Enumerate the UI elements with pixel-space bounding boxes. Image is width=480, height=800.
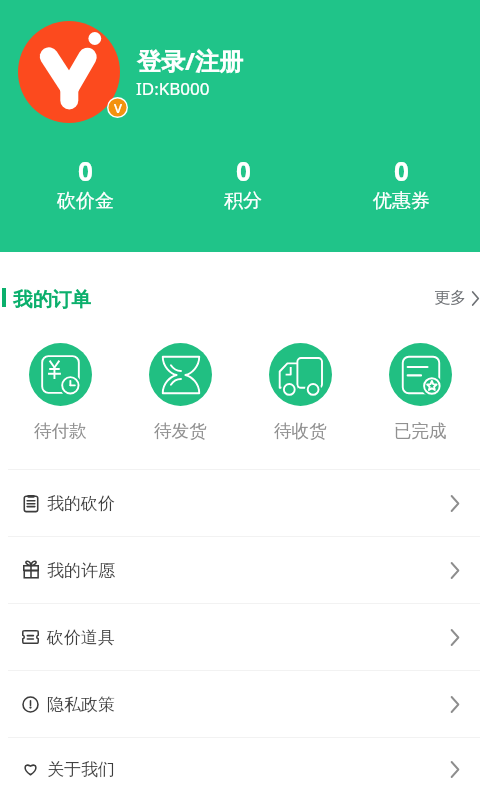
staticText: 隐私政策 (47, 694, 115, 715)
button[interactable]: 我的许愿 (0, 537, 480, 603)
staticText: 我的砍价 (47, 493, 115, 514)
staticText: 我的订单 (13, 287, 91, 312)
button[interactable]: 0 (164, 153, 322, 213)
staticText: 我的许愿 (47, 560, 115, 581)
staticText: 登录/注册 (137, 44, 243, 77)
button[interactable]: 待发货 (120, 343, 240, 442)
staticText: 0 (236, 153, 251, 188)
staticText: 更多 (434, 288, 466, 308)
staticText: ID:KB000 (136, 77, 210, 100)
button[interactable]: 0 (322, 153, 480, 213)
staticText: 关于我们 (47, 759, 115, 780)
button[interactable]: 隐私政策 (0, 671, 480, 737)
button[interactable]: 关于我们 (0, 738, 480, 800)
staticText: 积分 (224, 189, 262, 213)
staticText: 待付款 (34, 420, 87, 442)
button[interactable]: 已完成 (360, 343, 480, 442)
button[interactable]: 0 (6, 153, 164, 213)
staticText: 已完成 (394, 420, 447, 442)
staticText: 待发货 (154, 420, 207, 442)
button[interactable]: 待付款 (0, 343, 120, 442)
button[interactable]: 待收货 (240, 343, 360, 442)
staticText: 0 (394, 153, 409, 188)
staticText: 砍价道具 (47, 627, 115, 648)
staticText: 砍价金 (57, 189, 114, 213)
button[interactable]: 更多 (422, 288, 480, 308)
staticText: 0 (78, 153, 93, 188)
button[interactable]: V (0, 0, 480, 140)
staticText: 待收货 (274, 420, 327, 442)
staticText: V (114, 99, 122, 117)
button[interactable]: 我的砍价 (0, 470, 480, 536)
button[interactable]: 砍价道具 (0, 604, 480, 670)
staticText: 优惠券 (373, 189, 430, 213)
